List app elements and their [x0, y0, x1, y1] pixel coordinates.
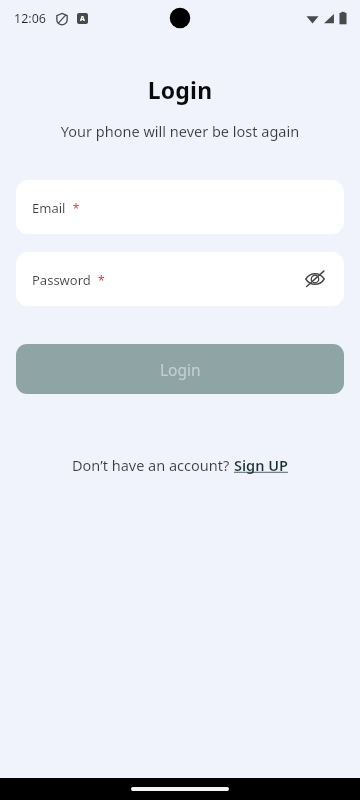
button[interactable]: Show password [299, 263, 331, 295]
staticText: Your phone will never be lost again [0, 121, 360, 141]
button[interactable]: Login [16, 344, 344, 394]
staticText: Login [160, 359, 201, 380]
staticText: Sign UP [234, 455, 288, 475]
staticText: Login [0, 74, 360, 105]
staticText: Password * [32, 270, 105, 289]
staticText: A [80, 14, 85, 24]
button[interactable]: Sign UP [234, 455, 288, 475]
button[interactable]: Password * [16, 252, 344, 306]
staticText: Don’t have an account? [72, 455, 234, 475]
staticText: Email * [32, 198, 80, 217]
button[interactable]: Email * [16, 180, 344, 234]
staticText: 12:06 [14, 10, 46, 27]
